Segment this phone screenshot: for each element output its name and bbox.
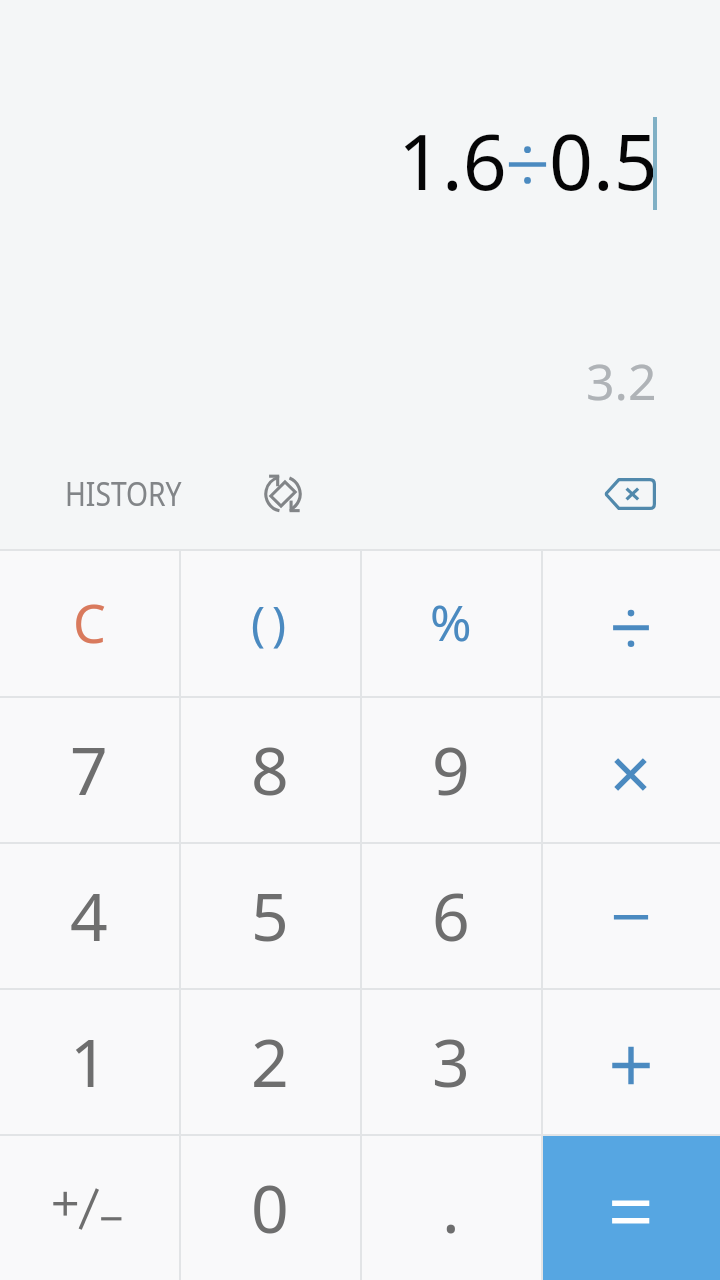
staticText: . bbox=[442, 1162, 460, 1252]
staticText: 0.5 bbox=[549, 108, 658, 213]
button[interactable]: HISTORY bbox=[38, 441, 208, 546]
staticText: 0 bbox=[251, 1162, 289, 1252]
button[interactable]: Backspace bbox=[575, 441, 685, 546]
button[interactable]: 1 bbox=[0, 988, 179, 1134]
button[interactable]: Add bbox=[543, 988, 720, 1134]
button[interactable]: 0 bbox=[181, 1134, 360, 1280]
button[interactable]: Equals bbox=[543, 1134, 720, 1280]
button[interactable]: Subtract bbox=[543, 842, 720, 988]
button[interactable]: 2 bbox=[181, 988, 360, 1134]
staticText: 2 bbox=[251, 1016, 289, 1106]
staticText: 3.2 bbox=[586, 347, 657, 415]
staticText: 9 bbox=[432, 724, 470, 814]
button[interactable]: C bbox=[0, 551, 179, 696]
staticText: 8 bbox=[251, 724, 289, 814]
button[interactable]: Multiply bbox=[543, 696, 720, 842]
button[interactable]: 9 bbox=[362, 696, 541, 842]
button[interactable]: 4 bbox=[0, 842, 179, 988]
button[interactable]: ( ) bbox=[181, 551, 360, 696]
staticText: 1 bbox=[70, 1016, 108, 1106]
button[interactable]: Rotate screen bbox=[228, 441, 338, 546]
staticText: 6 bbox=[432, 870, 470, 960]
button[interactable]: % bbox=[362, 551, 541, 696]
staticText: 3 bbox=[432, 1016, 470, 1106]
button[interactable]: 7 bbox=[0, 696, 179, 842]
button[interactable]: 8 bbox=[181, 696, 360, 842]
button[interactable]: 5 bbox=[181, 842, 360, 988]
staticText: ( ) bbox=[251, 591, 284, 655]
staticText: 7 bbox=[70, 724, 108, 814]
button[interactable]: Plus minus bbox=[0, 1134, 179, 1280]
button[interactable]: Divide bbox=[543, 551, 720, 696]
staticText: 1.6 bbox=[398, 108, 507, 213]
staticText: 5 bbox=[251, 870, 289, 960]
staticText: 4 bbox=[70, 870, 108, 960]
staticText: HISTORY bbox=[65, 471, 182, 516]
button[interactable]: 6 bbox=[362, 842, 541, 988]
staticText: C bbox=[73, 587, 106, 658]
button[interactable]: . bbox=[362, 1134, 541, 1280]
button[interactable]: 3 bbox=[362, 988, 541, 1134]
staticText: % bbox=[430, 588, 472, 656]
